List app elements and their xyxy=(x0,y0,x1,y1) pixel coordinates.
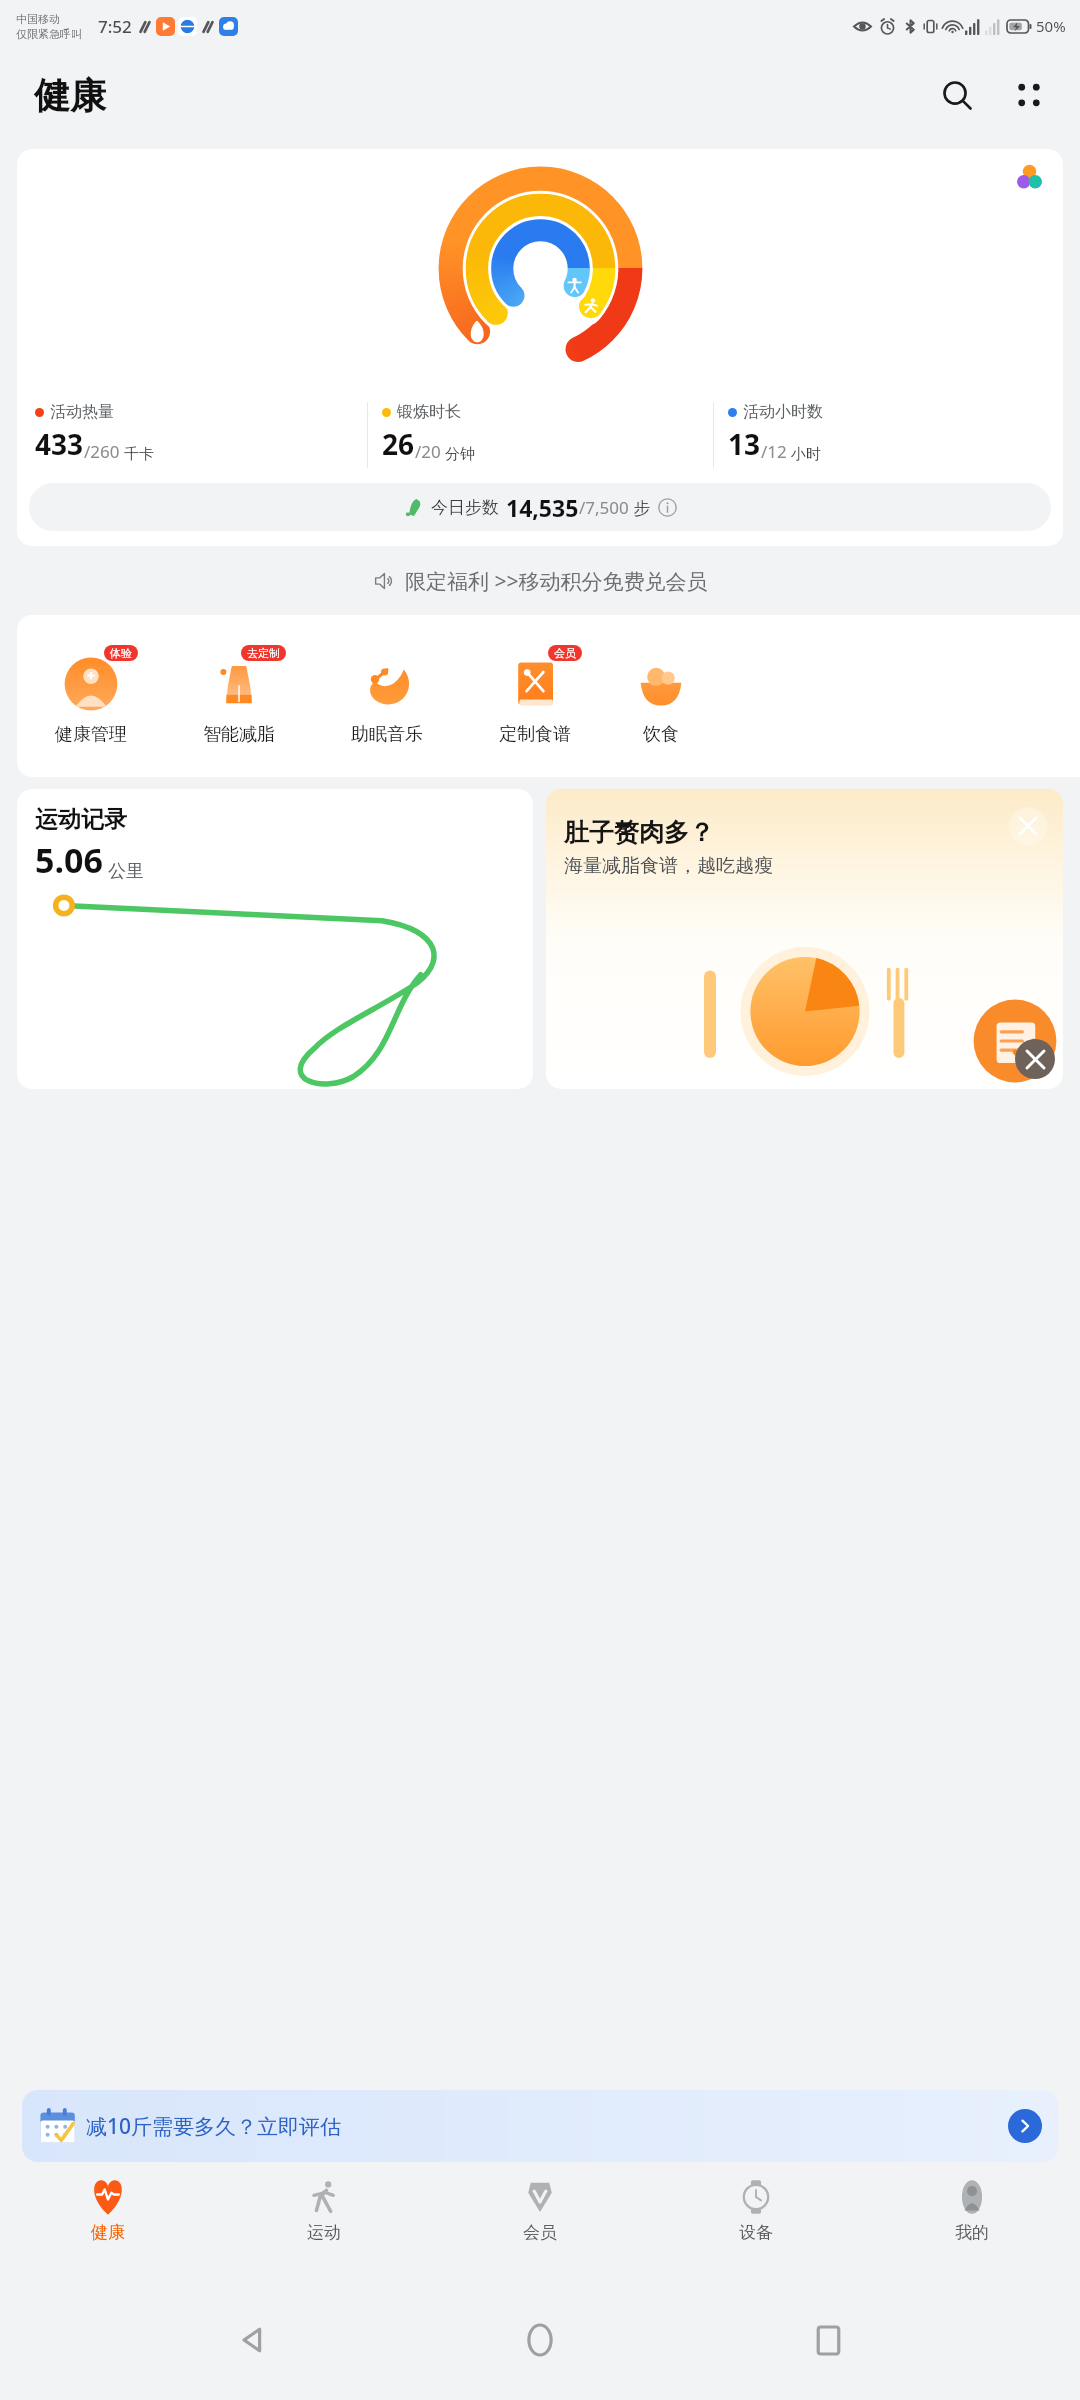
staticText: 定制食谱 xyxy=(499,723,571,746)
staticText: 50% xyxy=(1036,16,1066,36)
button[interactable]: 运动 xyxy=(216,2168,432,2280)
button[interactable]: 去定制 xyxy=(165,615,313,777)
button[interactable]: 今日步数 xyxy=(29,483,1051,531)
button[interactable]: Search xyxy=(930,68,984,122)
staticText: 健康管理 xyxy=(55,723,127,746)
staticText: 7:52 xyxy=(98,15,132,38)
staticText: 活动小时数 xyxy=(743,402,823,422)
staticText: 运动记录 xyxy=(35,805,127,834)
staticText: 助眠音乐 xyxy=(351,723,423,746)
staticText: 饮食 xyxy=(643,723,679,746)
button[interactable]: Home xyxy=(505,2305,575,2375)
button[interactable]: 体验 xyxy=(17,615,165,777)
staticText: 仅限紧急呼叫 xyxy=(16,27,82,41)
button[interactable]: 我的 xyxy=(864,2168,1080,2280)
staticText: 今日步数 xyxy=(431,497,499,518)
staticText: /7,500 xyxy=(579,496,629,519)
staticText: 智能减脂 xyxy=(203,723,275,746)
staticText: 体验 xyxy=(110,646,132,660)
button[interactable]: 饮食 xyxy=(609,615,713,777)
button[interactable]: 设备 xyxy=(648,2168,864,2280)
button[interactable]: 助眠音乐 xyxy=(313,615,461,777)
button[interactable]: 减10斤需要多久？立即评估 xyxy=(22,2090,1058,2162)
staticText: /20 xyxy=(415,440,441,463)
button[interactable]: Back xyxy=(218,2305,288,2375)
button[interactable]: 肚子赘肉多？ xyxy=(546,789,1063,1089)
button[interactable]: 活动热量 xyxy=(17,149,1063,546)
staticText: 小时 xyxy=(787,443,821,463)
staticText: 分钟 xyxy=(441,443,475,463)
staticText: 减10斤需要多久？立即评估 xyxy=(86,2112,342,2141)
staticText: 26 xyxy=(382,425,415,463)
staticText: 去定制 xyxy=(247,646,280,660)
staticText: /260 xyxy=(84,440,120,463)
button[interactable]: 会员 xyxy=(461,615,609,777)
staticText: 会员 xyxy=(523,2222,557,2243)
staticText: 5.06 xyxy=(35,837,103,883)
staticText: 海量减脂食谱，越吃越瘦 xyxy=(564,854,773,878)
staticText: 锻炼时长 xyxy=(397,402,461,422)
staticText: 步 xyxy=(629,496,651,519)
staticText: 433 xyxy=(35,425,84,463)
staticText: 会员 xyxy=(554,646,576,660)
staticText: 千卡 xyxy=(120,443,154,463)
button[interactable]: Dismiss xyxy=(1015,1039,1055,1079)
staticText: 肚子赘肉多？ xyxy=(564,817,714,848)
button[interactable]: 健康 xyxy=(0,2168,216,2280)
staticText: 我的 xyxy=(955,2222,989,2243)
staticText: 活动热量 xyxy=(50,402,114,422)
staticText: 设备 xyxy=(739,2222,773,2243)
button[interactable]: 运动记录 xyxy=(17,789,533,1089)
staticText: 13 xyxy=(728,425,761,463)
staticText: /12 xyxy=(761,440,787,463)
staticText: 中国移动 xyxy=(16,12,60,26)
staticText: 14,535 xyxy=(506,492,579,523)
staticText: 健康 xyxy=(34,73,106,118)
button[interactable]: 限定福利 >>移动积分免费兑会员 xyxy=(0,559,1080,603)
staticText: 公里 xyxy=(108,860,144,883)
staticText: 限定福利 >>移动积分免费兑会员 xyxy=(405,567,708,596)
button[interactable]: 会员 xyxy=(432,2168,648,2280)
staticText: 运动 xyxy=(307,2222,341,2243)
button[interactable]: Health services xyxy=(996,156,1063,196)
button[interactable]: Close ad xyxy=(1009,807,1047,845)
button[interactable]: More options xyxy=(1002,68,1056,122)
staticText: 健康 xyxy=(91,2222,125,2243)
button[interactable]: Recents xyxy=(793,2305,863,2375)
